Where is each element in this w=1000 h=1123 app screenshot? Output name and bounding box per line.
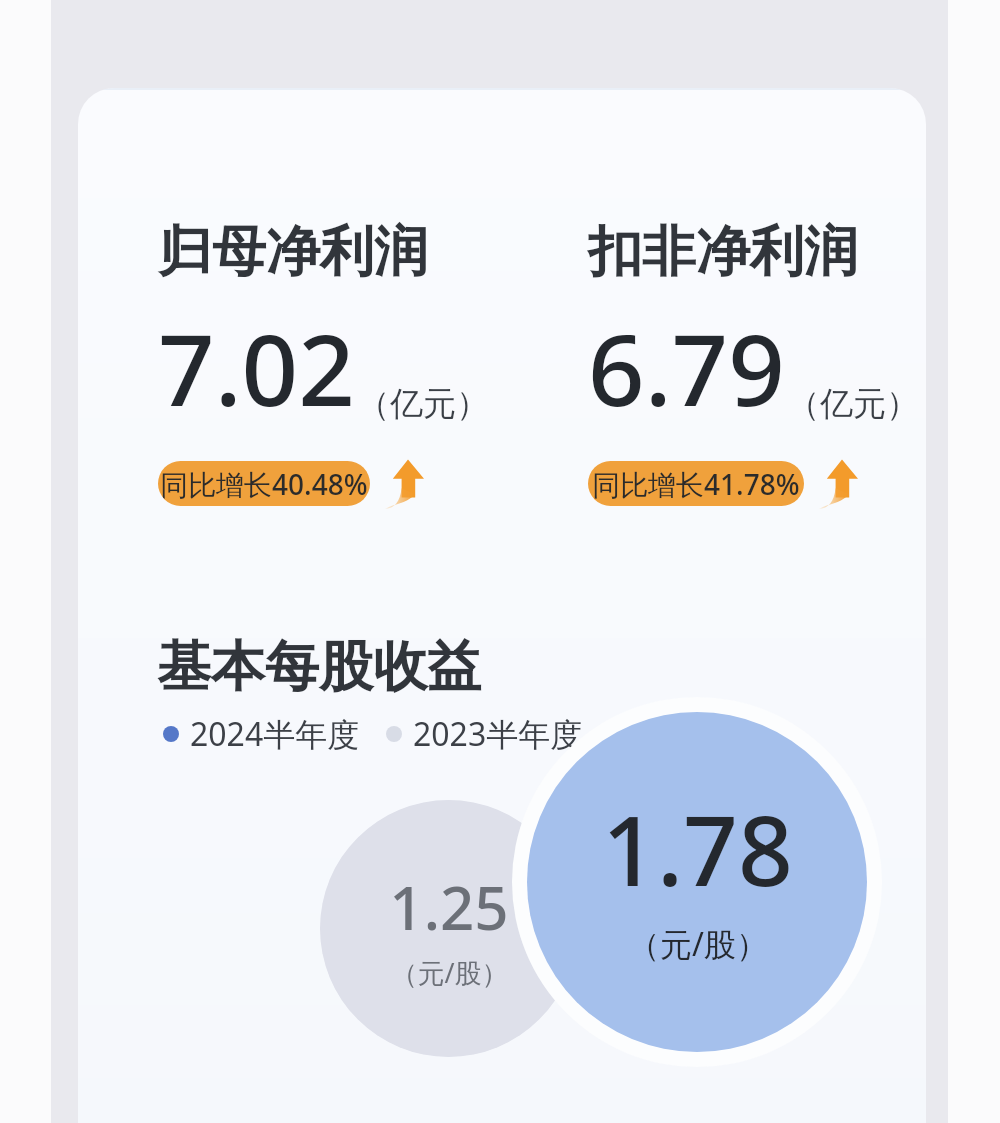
button[interactable]: 扣非净利润 xyxy=(588,218,919,509)
staticText: （亿元） xyxy=(357,383,489,425)
staticText: 同比增长40.48% xyxy=(160,465,368,503)
staticText: 归母净利润 xyxy=(158,218,428,286)
button[interactable]: 归母净利润 xyxy=(158,218,489,509)
button[interactable]: 1.25 xyxy=(320,800,577,1057)
staticText: （元/股） xyxy=(390,954,509,991)
button[interactable]: 基本每股收益 xyxy=(157,633,481,701)
staticText: 2023半年度 xyxy=(413,712,583,756)
staticText: 1.78 xyxy=(602,783,793,914)
staticText: 2024半年度 xyxy=(190,712,360,756)
staticText: 同比增长41.78% xyxy=(592,465,800,503)
other: Increase xyxy=(818,457,858,509)
staticText: 1.25 xyxy=(389,866,509,948)
button[interactable]: 1.78 xyxy=(527,712,867,1052)
other: Increase xyxy=(384,457,424,509)
staticText: （元/股） xyxy=(628,922,768,966)
staticText: 6.79 xyxy=(588,300,785,435)
button[interactable]: 同比增长40.48% xyxy=(158,461,370,506)
button[interactable]: 2024半年度 xyxy=(163,712,583,756)
button[interactable]: 同比增长41.78% xyxy=(588,461,804,506)
staticText: 7.02 xyxy=(158,300,355,435)
button[interactable] xyxy=(78,88,926,1123)
staticText: 扣非净利润 xyxy=(588,218,858,286)
staticText: 基本每股收益 xyxy=(157,633,481,701)
staticText: （亿元） xyxy=(787,383,919,425)
